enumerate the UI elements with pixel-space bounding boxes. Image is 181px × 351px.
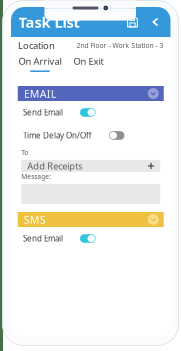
button[interactable]: Time Delay On/Off (11, 124, 170, 147)
button[interactable]: Back (147, 7, 163, 37)
staticText: To (21, 148, 28, 157)
button[interactable]: On Arrival (18, 54, 61, 75)
button[interactable]: Add Receipts (21, 160, 160, 172)
staticText: On Arrival (18, 55, 61, 67)
staticText: Send Email (23, 107, 63, 118)
button[interactable]: On Exit (73, 54, 103, 75)
button[interactable]: Send Email (11, 227, 170, 250)
staticText: On Exit (73, 55, 103, 67)
button[interactable]: Save (122, 7, 142, 37)
staticText: Send Email (23, 233, 63, 244)
staticText: EMAIL (24, 86, 57, 101)
staticText: SMS (24, 212, 46, 227)
staticText: Location (18, 39, 55, 52)
staticText: Add Receipts (27, 160, 82, 172)
button[interactable]: SMS (18, 212, 164, 227)
staticText: Message: (21, 172, 51, 181)
button[interactable]: Send Email (11, 101, 170, 124)
button[interactable]: EMAIL (18, 86, 164, 101)
staticText: Time Delay On/Off (23, 130, 92, 141)
staticText: Task List (18, 12, 79, 32)
staticText: 2nd Floor - Work Station - 3 (76, 41, 163, 50)
